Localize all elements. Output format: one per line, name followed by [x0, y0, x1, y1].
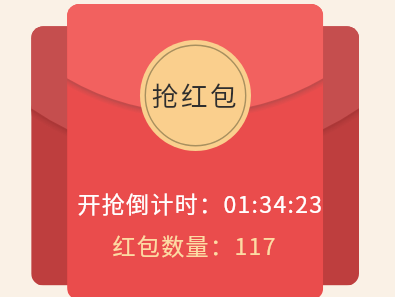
button[interactable]: Grab red packet — [0, 0, 395, 297]
